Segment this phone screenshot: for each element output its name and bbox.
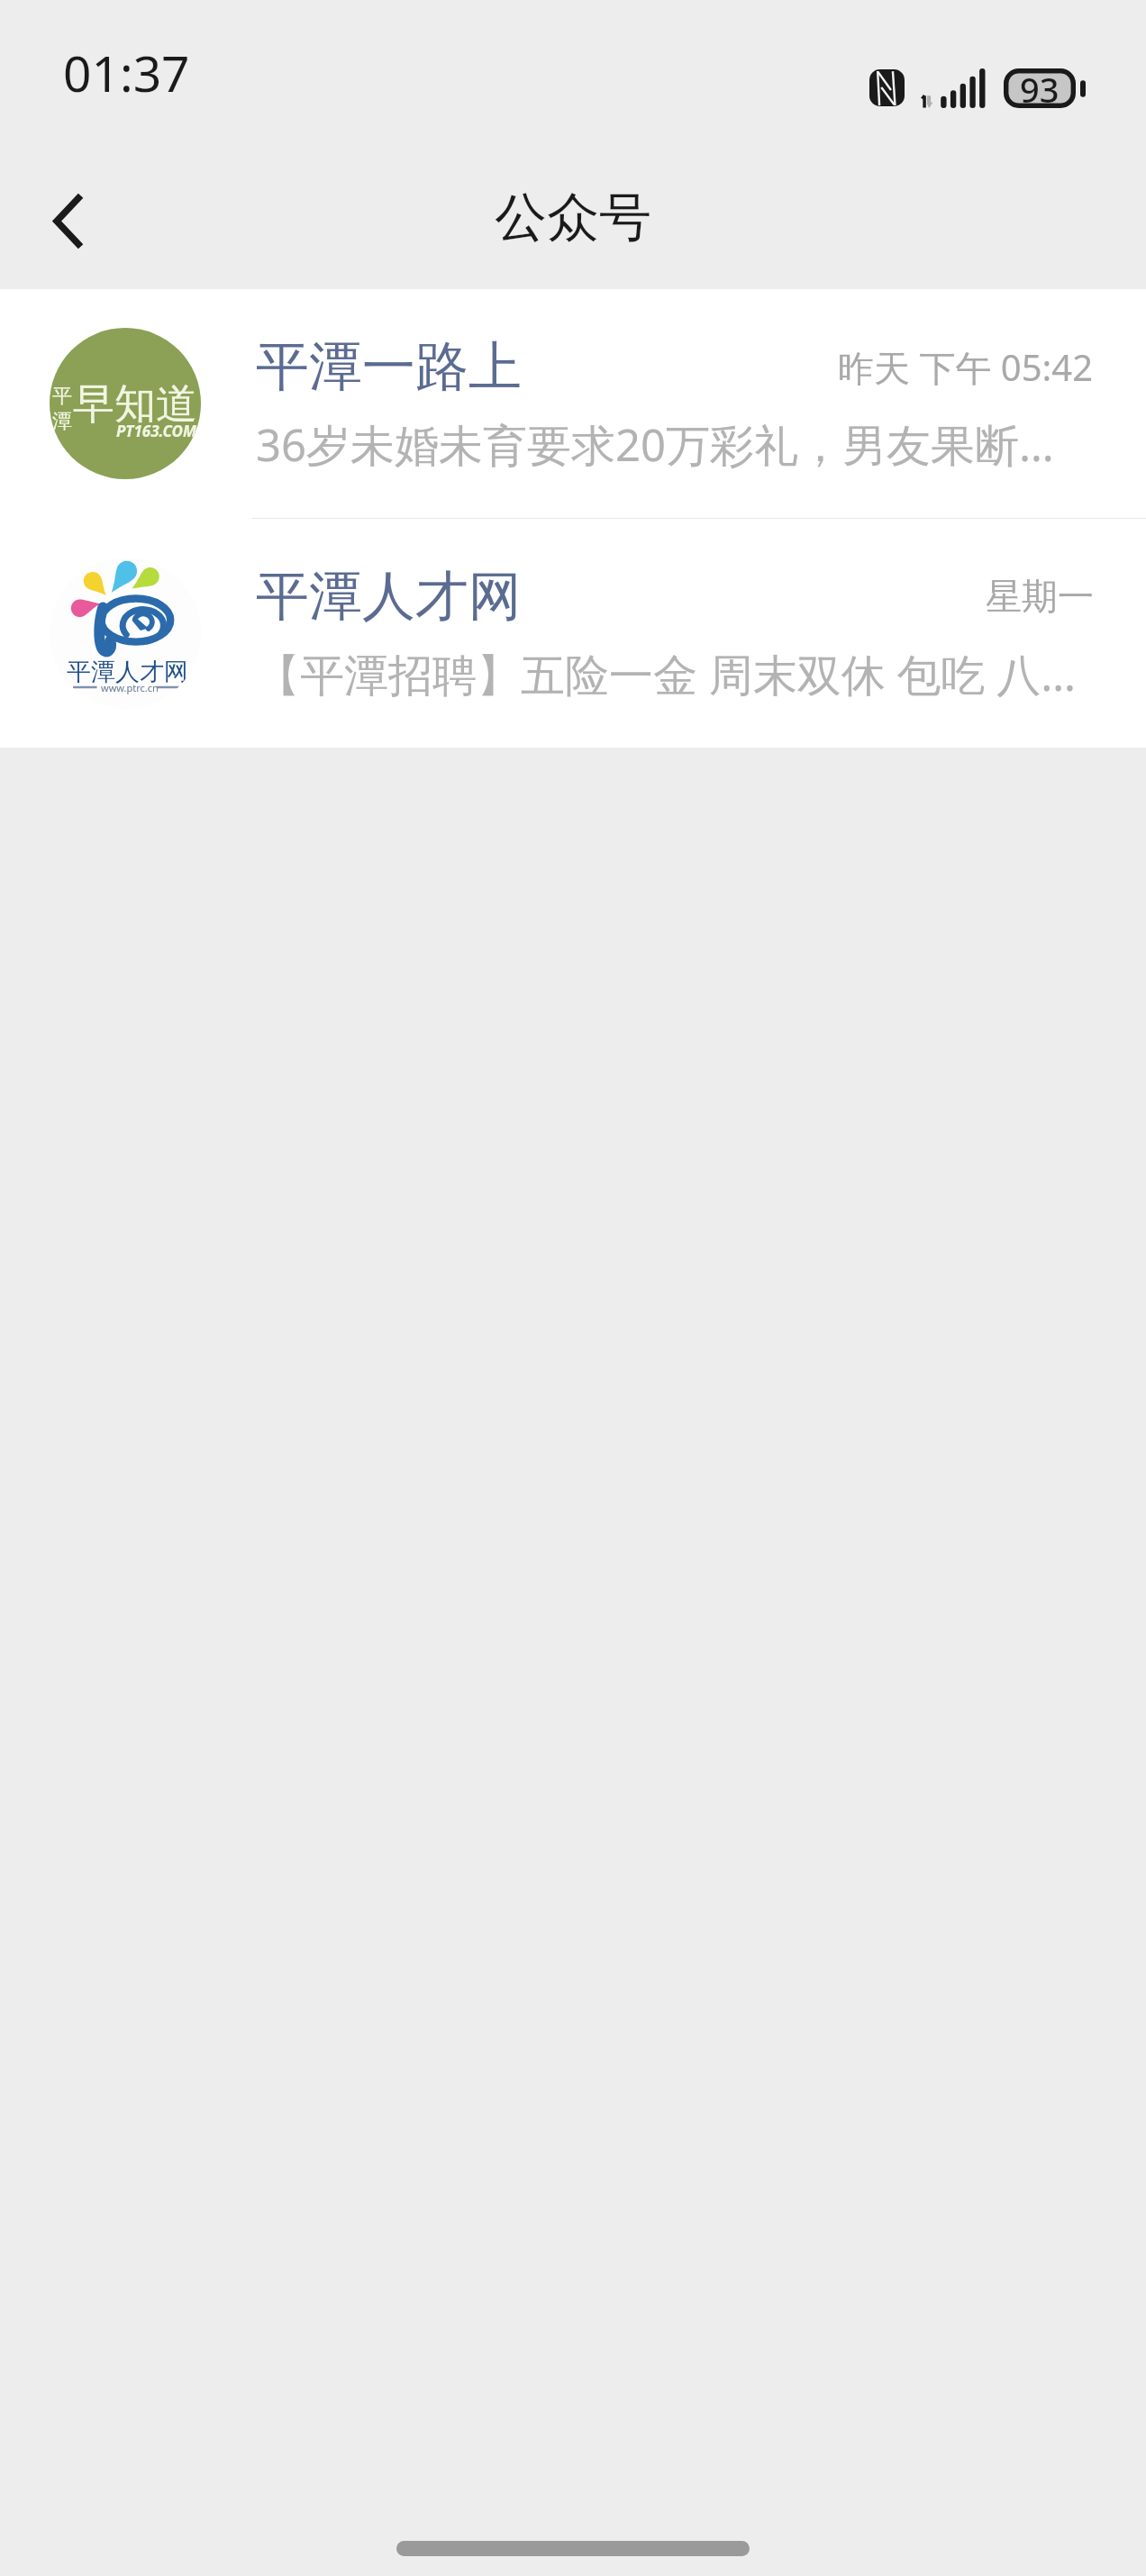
staticText: 【平潭招聘】五险一金 周末双休 包吃 八… xyxy=(256,644,1076,704)
staticText: PT163.COM xyxy=(116,421,197,441)
staticText: www.ptrc.cn xyxy=(101,681,159,694)
staticText: 星期一 xyxy=(986,574,1094,619)
button[interactable]: 平潭人才网 xyxy=(0,519,1146,748)
staticText: 平 xyxy=(52,384,72,409)
staticText: 01:37 xyxy=(63,39,190,106)
staticText: 平潭一路上 xyxy=(256,333,522,400)
staticText: 93 xyxy=(1020,66,1060,105)
staticText: 36岁未婚未育要求20万彩礼，男友果断… xyxy=(256,414,1054,475)
staticText: 早知道 xyxy=(73,378,197,431)
staticText: 平潭人才网 xyxy=(256,563,522,630)
button[interactable]: 平 xyxy=(0,289,1146,518)
button[interactable]: Back xyxy=(0,150,135,285)
staticText: 潭 xyxy=(52,409,72,434)
staticText: 昨天 下午 05:42 xyxy=(838,342,1094,392)
staticText: 公众号 xyxy=(495,185,651,250)
staticText: 平潭人才网 xyxy=(67,657,188,687)
